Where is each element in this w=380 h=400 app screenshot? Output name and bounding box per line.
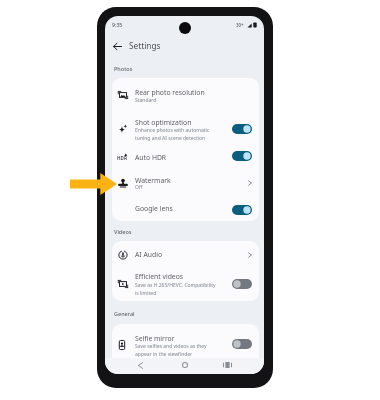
button[interactable]: Toggle on — [232, 151, 252, 161]
button[interactable] — [112, 324, 259, 368]
staticText: Videos — [114, 228, 132, 235]
button[interactable]: Back — [132, 357, 148, 373]
button[interactable]: Toggle off — [232, 339, 252, 349]
staticText: General — [114, 310, 135, 317]
staticText: 30+ — [236, 22, 244, 28]
button[interactable] — [112, 170, 259, 196]
staticText: Google lens — [135, 204, 173, 213]
button[interactable] — [112, 196, 259, 221]
staticText: Photos — [114, 65, 133, 72]
staticText: Off — [135, 184, 143, 191]
staticText: Selfie mirror — [135, 334, 175, 343]
button[interactable] — [112, 78, 259, 113]
button[interactable]: Toggle on — [232, 205, 252, 215]
staticText: Save as H.265/HEVC. Compatibility is lim… — [135, 282, 216, 296]
staticText: Auto HDR — [135, 153, 167, 162]
staticText: Enhance photos with automatic tuning and… — [135, 127, 210, 141]
staticText: 9:35 — [112, 21, 123, 28]
button[interactable]: Navigate up — [108, 37, 127, 56]
staticText: HDR — [117, 155, 127, 161]
button[interactable] — [112, 268, 259, 301]
staticText: Shot optimization — [135, 118, 192, 127]
staticText: Watermark — [135, 176, 171, 185]
button[interactable]: Home — [177, 357, 193, 373]
staticText: Save selfies and videos as they appear i… — [135, 343, 207, 357]
staticText: Standard — [135, 97, 157, 104]
button[interactable]: Toggle on — [232, 124, 252, 134]
staticText: AI Audio — [135, 250, 163, 259]
staticText: Settings — [129, 40, 161, 51]
button[interactable] — [112, 113, 259, 144]
button[interactable] — [112, 144, 259, 170]
staticText: Efficient videos — [135, 272, 184, 281]
staticText: Rear photo resolution — [135, 88, 205, 97]
button[interactable] — [112, 241, 259, 268]
button[interactable]: Recent apps — [219, 357, 235, 373]
button[interactable]: Toggle off — [232, 279, 252, 289]
